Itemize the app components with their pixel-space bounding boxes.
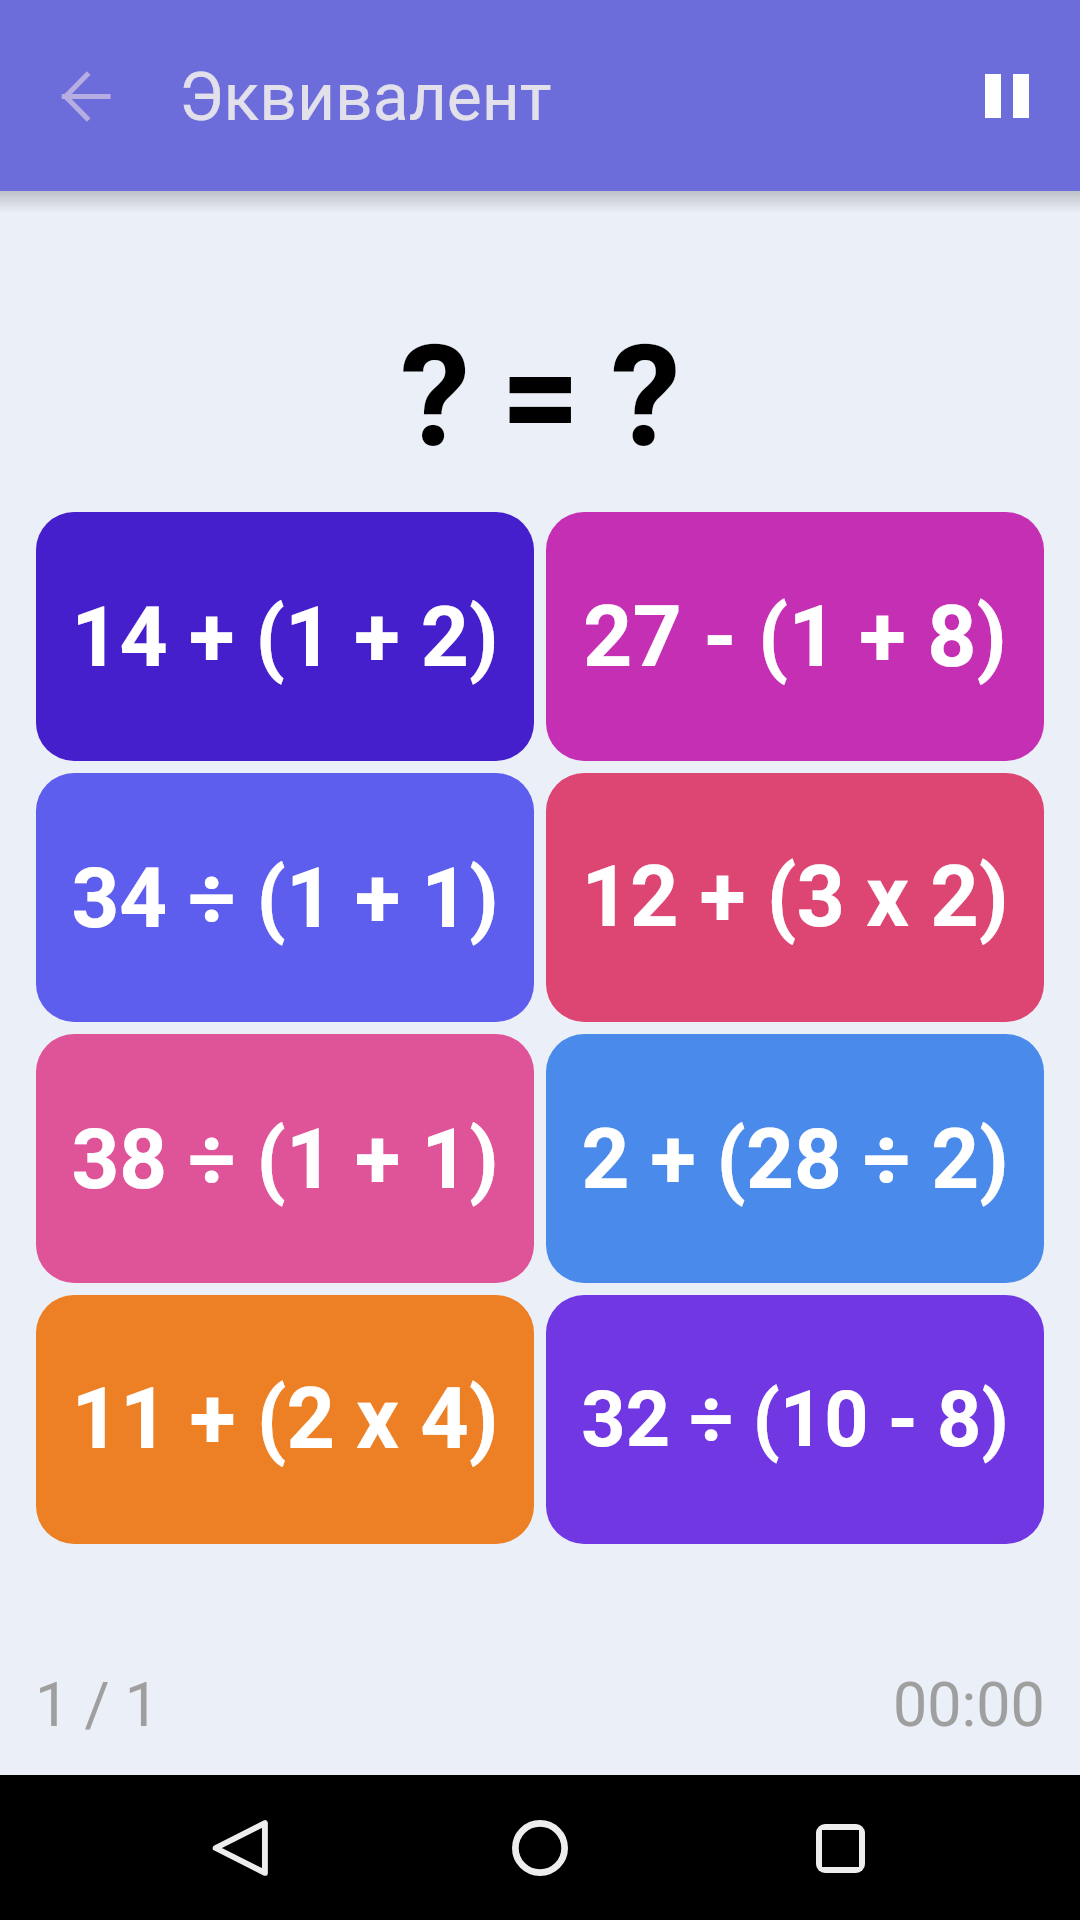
button[interactable]: Home xyxy=(490,1798,590,1898)
button[interactable]: 38 ÷ (1 + 1) xyxy=(36,1034,534,1283)
button[interactable]: 14 + (1 + 2) xyxy=(36,512,534,761)
button[interactable]: Back xyxy=(190,1798,290,1898)
button[interactable]: 32 ÷ (10 - 8) xyxy=(546,1295,1044,1544)
button[interactable]: 11 + (2 x 4) xyxy=(36,1295,534,1544)
staticText: 34 ÷ (1 + 1) xyxy=(71,849,499,947)
staticText: 2 + (28 ÷ 2) xyxy=(581,1110,1009,1208)
staticText: 38 ÷ (1 + 1) xyxy=(71,1110,499,1208)
staticText: 14 + (1 + 2) xyxy=(71,588,499,686)
staticText: 00:00 xyxy=(893,1669,1045,1740)
staticText: 11 + (2 x 4) xyxy=(71,1370,499,1469)
button[interactable]: 12 + (3 x 2) xyxy=(546,773,1044,1022)
button[interactable]: 2 + (28 ÷ 2) xyxy=(546,1034,1044,1283)
staticText: 32 ÷ (10 - 8) xyxy=(581,1374,1009,1465)
button[interactable]: 27 - (1 + 8) xyxy=(546,512,1044,761)
button[interactable]: Recents xyxy=(790,1798,890,1898)
button[interactable]: Pause xyxy=(959,48,1055,144)
staticText: ? = ? xyxy=(400,314,678,479)
staticText: 1 / 1 xyxy=(35,1669,159,1740)
staticText: Эквивалент xyxy=(179,59,552,136)
staticText: 12 + (3 x 2) xyxy=(581,848,1009,947)
button[interactable]: 34 ÷ (1 + 1) xyxy=(36,773,534,1022)
staticText: 27 - (1 + 8) xyxy=(583,586,1007,687)
button[interactable]: Back xyxy=(37,48,133,144)
